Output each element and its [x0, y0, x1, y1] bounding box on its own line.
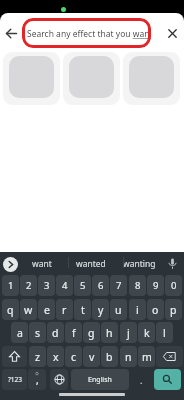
staticText: a: [17, 326, 23, 340]
staticText: ,: [36, 373, 39, 387]
staticText: v: [89, 350, 95, 364]
button[interactable]: wanting: [114, 254, 164, 274]
button[interactable]: 2: [20, 275, 37, 296]
button[interactable]: ,: [28, 369, 46, 390]
button[interactable]: English: [71, 369, 129, 390]
button[interactable]: [3, 257, 18, 272]
button[interactable]: 9: [147, 275, 164, 296]
staticText: g: [88, 326, 95, 340]
button[interactable]: 8: [129, 275, 146, 296]
staticText: f: [72, 326, 76, 340]
button[interactable]: [123, 52, 180, 105]
staticText: y: [98, 303, 104, 317]
staticText: c: [71, 350, 77, 364]
button[interactable]: 1: [2, 275, 19, 296]
staticText: q: [7, 303, 14, 317]
staticText: s: [35, 326, 41, 340]
button[interactable]: [50, 369, 68, 390]
button[interactable]: 3: [38, 275, 55, 296]
button[interactable]: [63, 52, 120, 105]
button[interactable]: y: [92, 299, 109, 320]
button[interactable]: [168, 29, 177, 38]
button[interactable]: p: [165, 299, 182, 320]
button[interactable]: [154, 369, 181, 390]
staticText: z: [35, 350, 40, 364]
button[interactable]: j: [120, 322, 137, 343]
button[interactable]: n: [120, 346, 137, 367]
button[interactable]: v: [83, 346, 100, 367]
staticText: 5: [80, 279, 86, 292]
staticText: n: [125, 350, 132, 364]
staticText: r: [62, 303, 67, 317]
button[interactable]: b: [101, 346, 118, 367]
button[interactable]: [6, 28, 17, 39]
button[interactable]: [3, 52, 60, 105]
staticText: .: [140, 374, 143, 386]
button[interactable]: a: [11, 322, 28, 343]
button[interactable]: r: [56, 299, 73, 320]
button[interactable]: want: [18, 254, 66, 274]
button[interactable]: o: [147, 299, 164, 320]
staticText: 1: [8, 279, 14, 292]
button[interactable]: Search any effect that you want: [22, 18, 151, 48]
staticText: wanted: [76, 258, 106, 270]
staticText: 7: [116, 279, 122, 292]
staticText: m: [142, 350, 152, 364]
button[interactable]: .: [131, 369, 151, 390]
button[interactable]: f: [65, 322, 82, 343]
staticText: p: [170, 303, 177, 317]
staticText: t: [81, 303, 85, 317]
staticText: 4: [62, 279, 68, 292]
staticText: e: [44, 303, 50, 317]
button[interactable]: 4: [56, 275, 73, 296]
staticText: 0: [171, 279, 177, 292]
button[interactable]: m: [138, 346, 155, 367]
staticText: 6: [98, 279, 104, 292]
staticText: 9: [153, 279, 159, 292]
button[interactable]: 7: [110, 275, 127, 296]
button[interactable]: z: [29, 346, 46, 367]
staticText: k: [144, 326, 150, 340]
staticText: i: [136, 303, 139, 317]
button[interactable]: [168, 258, 177, 271]
button[interactable]: i: [129, 299, 146, 320]
staticText: wanting: [123, 258, 156, 270]
staticText: d: [52, 326, 59, 340]
button[interactable]: c: [65, 346, 82, 367]
staticText: x: [53, 350, 59, 364]
staticText: j: [127, 326, 130, 340]
staticText: b: [106, 350, 113, 364]
button[interactable]: 6: [92, 275, 109, 296]
staticText: Search any effect that you want: [27, 28, 151, 40]
button[interactable]: 5: [74, 275, 91, 296]
button[interactable]: u: [110, 299, 127, 320]
staticText: want: [32, 258, 52, 270]
button[interactable]: s: [29, 322, 46, 343]
staticText: 3: [44, 279, 50, 292]
staticText: u: [115, 303, 122, 317]
staticText: l: [163, 326, 166, 340]
button[interactable]: w: [20, 299, 37, 320]
button[interactable]: t: [74, 299, 91, 320]
button[interactable]: d: [47, 322, 64, 343]
button[interactable]: [2, 346, 27, 367]
button[interactable]: g: [83, 322, 100, 343]
staticText: w: [24, 303, 33, 317]
button[interactable]: wanted: [66, 254, 116, 274]
button[interactable]: l: [156, 322, 173, 343]
button[interactable]: e: [38, 299, 55, 320]
staticText: ?123: [8, 375, 22, 384]
button[interactable]: ?123: [2, 369, 27, 390]
staticText: o: [152, 303, 159, 317]
button[interactable]: [156, 346, 183, 367]
button[interactable]: 0: [165, 275, 182, 296]
staticText: English: [88, 375, 112, 385]
button[interactable]: k: [138, 322, 155, 343]
button[interactable]: x: [47, 346, 64, 367]
button[interactable]: q: [2, 299, 19, 320]
button[interactable]: h: [101, 322, 118, 343]
staticText: h: [106, 326, 113, 340]
staticText: 2: [26, 279, 32, 292]
staticText: 8: [135, 279, 141, 292]
